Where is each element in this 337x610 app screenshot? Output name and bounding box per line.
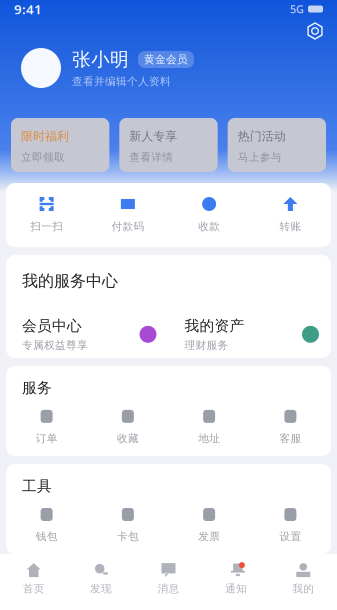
staticText: 收款 [198,220,220,233]
button[interactable]: 通知 [202,563,270,595]
staticText: 通知 [225,582,247,595]
button[interactable]: 新人专享 [119,118,218,172]
button[interactable]: 发票 [168,508,250,543]
staticText: 发票 [198,530,220,543]
staticText: 立即领取 [21,151,65,164]
button[interactable]: 钱包 [6,508,87,543]
staticText: 消息 [157,582,179,595]
staticText: 发现 [90,582,112,595]
button[interactable]: 扫一扫 [6,197,87,233]
staticText: 订单 [36,432,58,445]
button[interactable]: 地址 [168,410,250,445]
staticText: 卡包 [117,530,139,543]
staticText: 工具 [22,477,52,495]
staticText: 服务 [22,379,52,397]
button[interactable]: 首页 [0,563,67,595]
staticText: 付款码 [111,220,144,233]
staticText: 我的 [292,582,314,595]
button[interactable]: 设置 [250,508,331,543]
staticText: 9:41 [14,0,42,18]
button[interactable]: 限时福利 [11,118,109,172]
button[interactable]: 张小明 [0,44,337,88]
button[interactable]: Settings [300,18,330,44]
staticText: 查看详情 [129,151,173,164]
staticText: 转账 [279,220,301,233]
staticText: 5G [290,2,304,16]
button[interactable]: 消息 [135,563,202,595]
button[interactable]: 卡包 [87,508,168,543]
staticText: 新人专享 [129,129,177,144]
staticText: 设置 [279,530,301,543]
staticText: 会员中心 [22,317,82,335]
button[interactable]: 我的资产 [168,317,331,352]
staticText: 客服 [279,432,301,445]
staticText: 我的资产 [184,317,244,335]
staticText: 黄金会员 [144,53,188,66]
button[interactable]: 转账 [250,197,331,233]
button[interactable]: 订单 [6,410,87,445]
staticText: 马上参与 [238,151,282,164]
button[interactable]: 我的 [270,563,337,595]
button[interactable]: 热门活动 [228,118,326,172]
button[interactable]: 付款码 [87,197,168,233]
staticText: 热门活动 [238,129,286,144]
staticText: 专属权益尊享 [22,339,88,352]
staticText: 限时福利 [21,129,69,144]
staticText: 收藏 [117,432,139,445]
button[interactable]: 收藏 [87,410,168,445]
staticText: 查看并编辑个人资料 [72,75,171,88]
staticText: 扫一扫 [30,220,63,233]
staticText: 钱包 [36,530,58,543]
staticText: 地址 [198,432,220,445]
button[interactable]: 发现 [67,563,135,595]
button[interactable]: 客服 [250,410,331,445]
staticText: 我的服务中心 [22,271,118,291]
staticText: 理财服务 [184,339,228,352]
staticText: 张小明 [72,48,129,71]
button[interactable]: 会员中心 [6,317,168,352]
staticText: 首页 [23,582,45,595]
button[interactable]: 收款 [168,197,250,233]
